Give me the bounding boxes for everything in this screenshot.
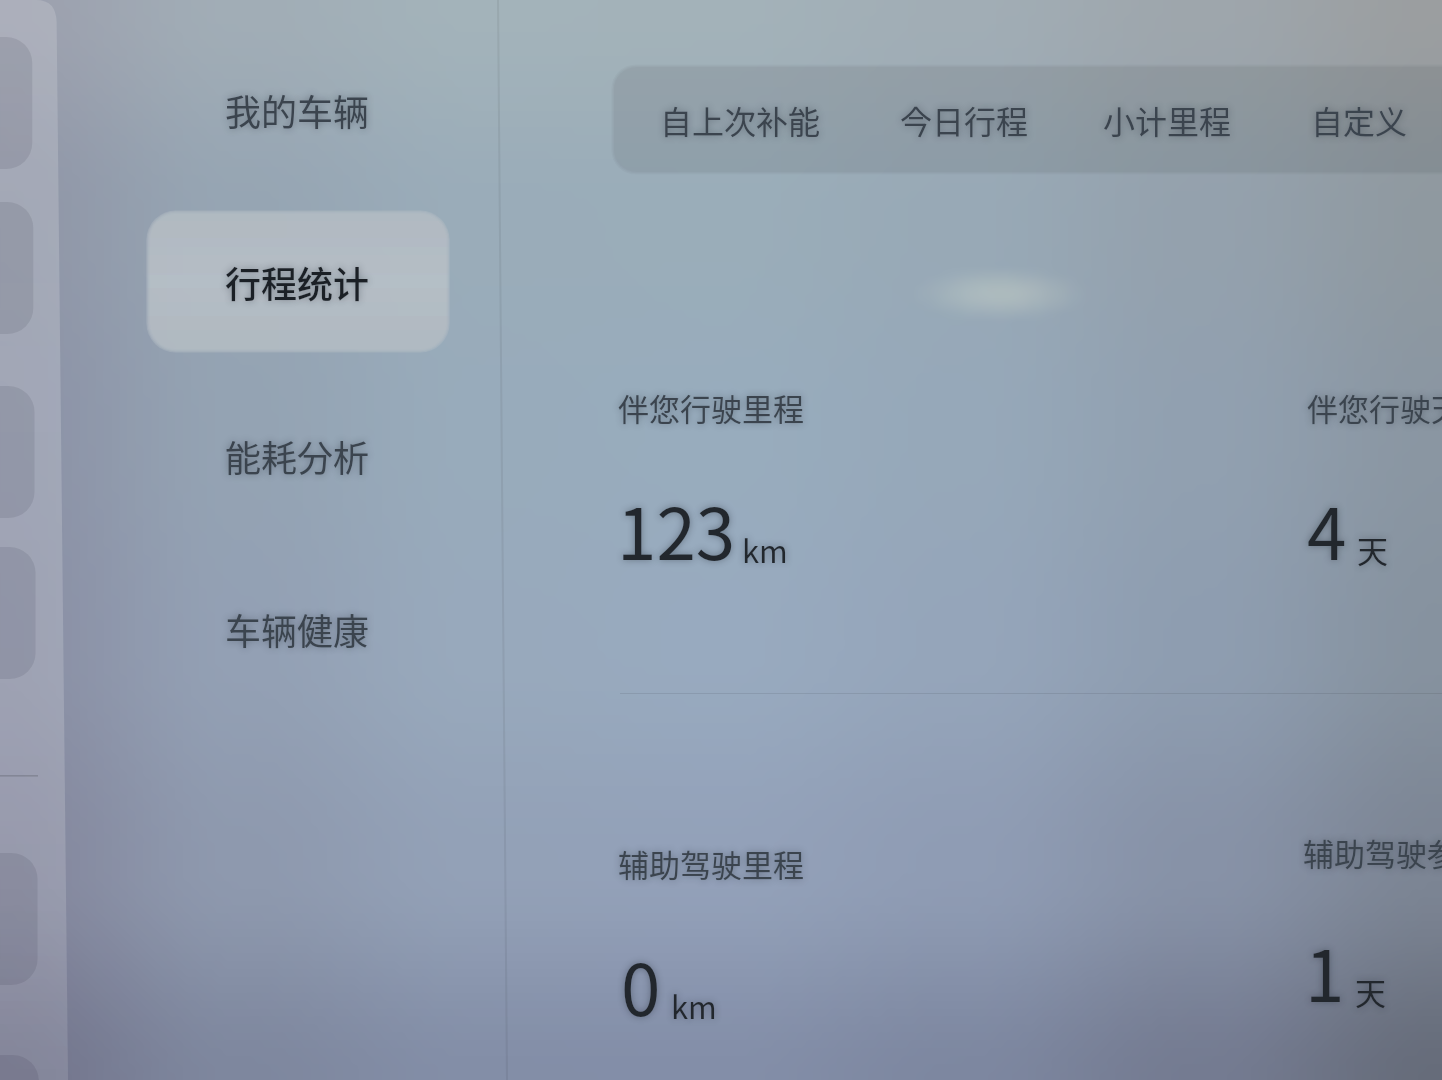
button[interactable]: 我的车辆 <box>151 43 443 177</box>
button[interactable]: 小计里程 <box>1081 67 1253 172</box>
staticText: 能耗分析 <box>225 430 370 482</box>
staticText: 辅助驾驶里程 <box>618 841 804 886</box>
button[interactable]: 行程统计 <box>151 215 443 349</box>
button[interactable] <box>150 214 446 349</box>
button[interactable]: Settings <box>0 1055 38 1080</box>
staticText: 0 <box>621 934 661 1037</box>
staticText: 4 <box>1307 478 1347 581</box>
staticText: 辅助驾驶参 <box>1303 830 1442 875</box>
button[interactable]: Navigation <box>0 202 38 334</box>
staticText: 自定义 <box>1311 97 1408 143</box>
staticText: 今日行程 <box>900 97 1029 143</box>
staticText: 小计里程 <box>1103 97 1232 143</box>
staticText: 1 <box>1305 920 1345 1023</box>
button[interactable]: Climate <box>0 853 38 985</box>
staticText: 天 <box>1357 527 1388 572</box>
button[interactable]: 能耗分析 <box>151 389 443 523</box>
button[interactable]: 车辆健康 <box>151 562 443 696</box>
button[interactable]: 自上次补能 <box>639 67 842 172</box>
staticText: km <box>671 983 717 1028</box>
staticText: 天 <box>1355 969 1386 1014</box>
button[interactable]: 自定义 <box>1289 67 1430 172</box>
staticText: km <box>742 527 788 572</box>
staticText: 123 <box>617 478 736 581</box>
staticText: 伴您行驶里程 <box>618 385 804 430</box>
button[interactable]: Home <box>0 37 38 169</box>
button[interactable]: Phone <box>0 547 38 679</box>
staticText: 自上次补能 <box>660 97 821 143</box>
staticText: 我的车辆 <box>225 84 370 136</box>
button[interactable]: 今日行程 <box>878 67 1050 172</box>
staticText: 伴您行驶天 <box>1307 385 1442 430</box>
staticText: 车辆健康 <box>225 603 370 655</box>
button[interactable]: Media <box>0 386 38 518</box>
staticText: 行程统计 <box>225 256 370 308</box>
